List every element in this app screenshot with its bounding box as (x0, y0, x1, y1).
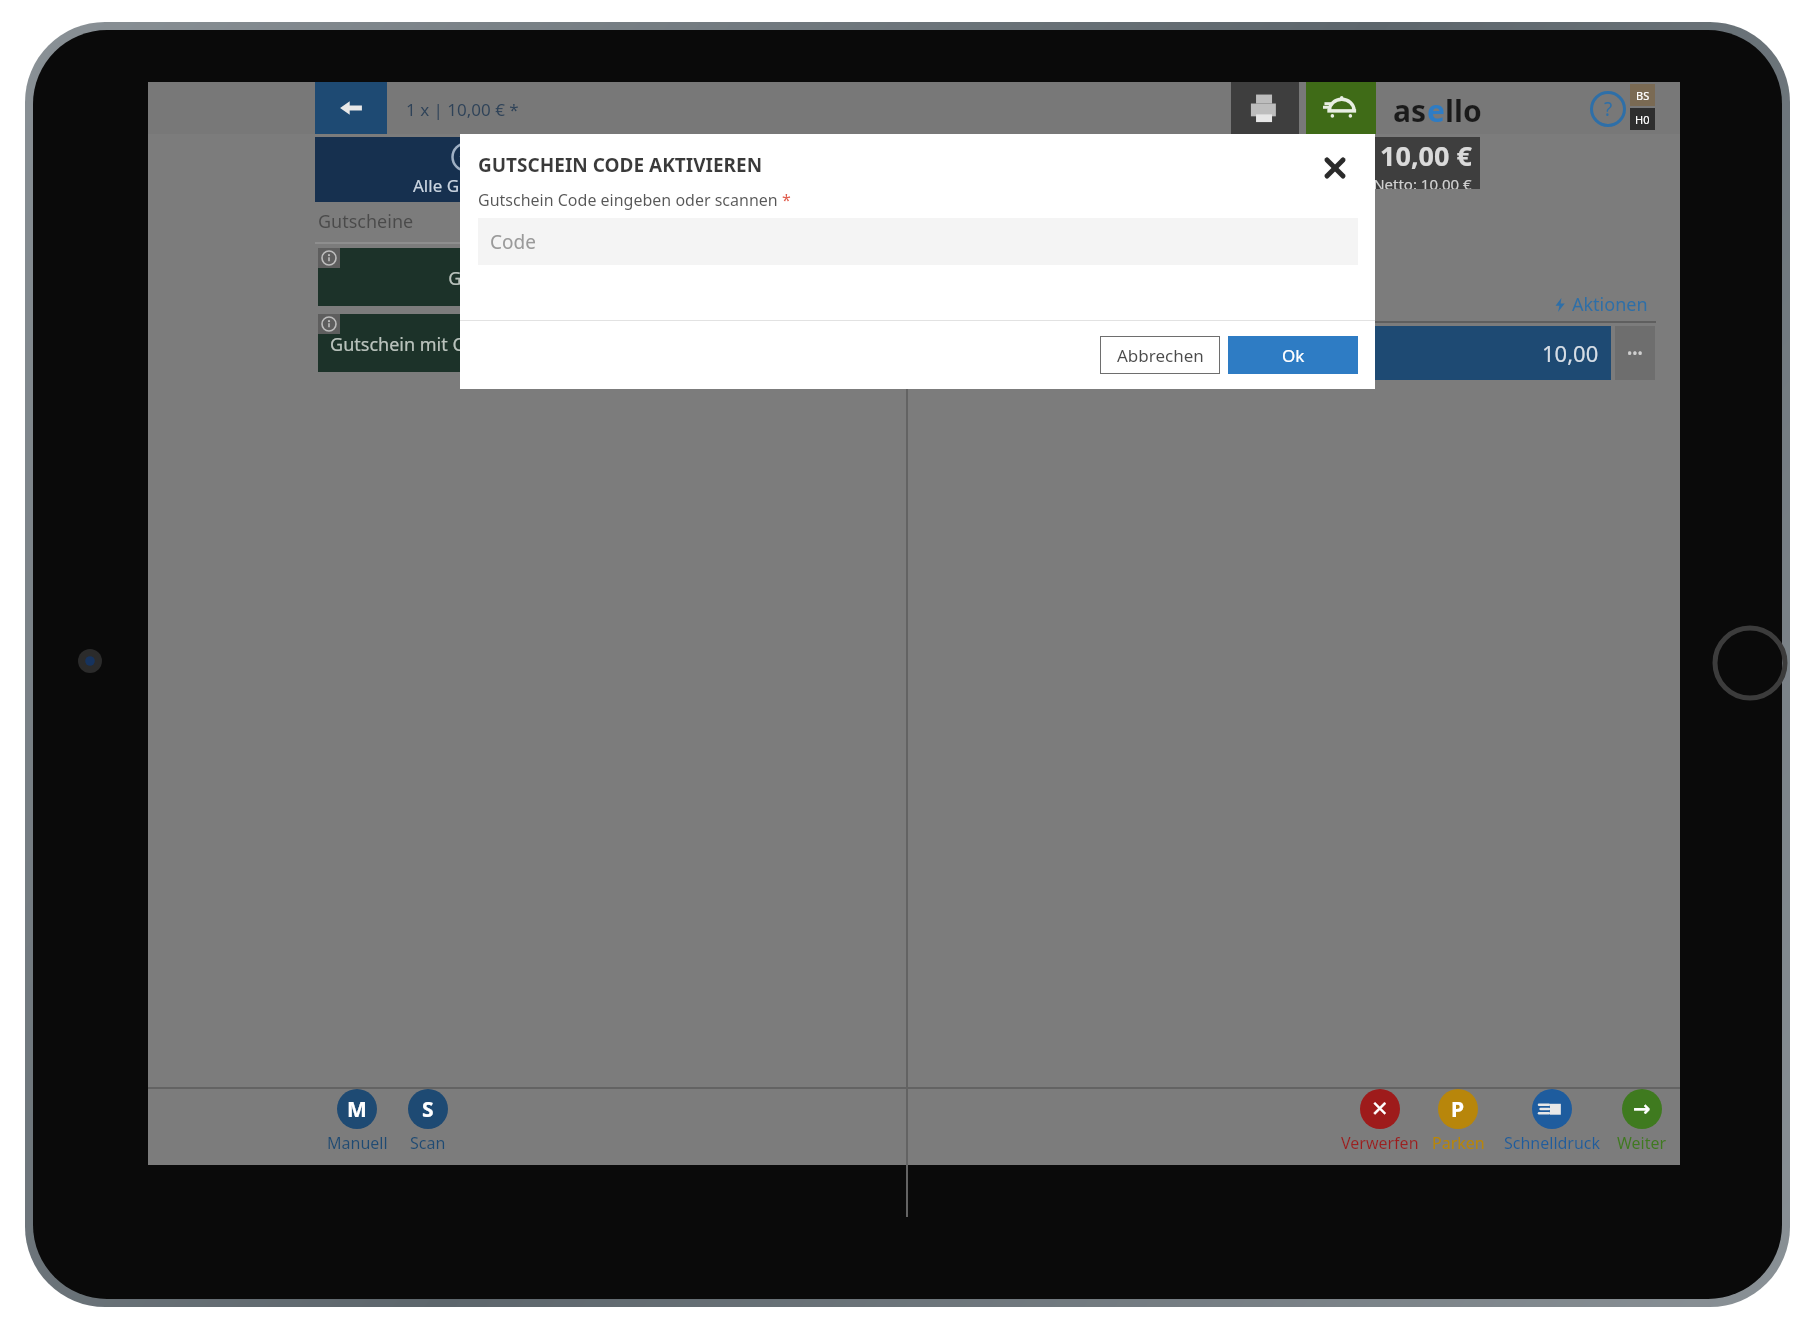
staticText: * (782, 189, 791, 211)
staticText: Aktionen (1572, 292, 1648, 317)
staticText: Schnelldruck (1504, 1132, 1601, 1154)
staticText: ✕ (1371, 1097, 1389, 1121)
staticText: ••• (1627, 344, 1643, 363)
button[interactable]: Schließen (1315, 148, 1355, 188)
button[interactable]: Abbrechen (1100, 336, 1220, 374)
staticText: llo (1445, 90, 1482, 126)
button[interactable]: S (386, 1089, 470, 1154)
button[interactable]: Gutschein ohne Code (513, 314, 710, 372)
staticText: GUTSCHEIN CODE AKTIVIEREN (478, 152, 763, 178)
staticText: e (1427, 90, 1445, 126)
staticText: BS (1636, 88, 1650, 103)
button[interactable]: 10,00 (1251, 326, 1611, 380)
button[interactable]: → (1600, 1089, 1684, 1154)
staticText: P (1451, 1095, 1465, 1124)
staticText: Abbrechen (1117, 344, 1204, 367)
button[interactable]: Service (1306, 82, 1376, 134)
button[interactable]: Alle Gruppen (315, 137, 615, 202)
staticText: Manuell (327, 1132, 388, 1154)
staticText: → (1633, 1097, 1651, 1121)
staticText: ? (1604, 96, 1613, 122)
staticText: Code (490, 229, 536, 255)
staticText: S (422, 1095, 434, 1124)
staticText: M (347, 1095, 367, 1124)
button[interactable]: Ok (1228, 336, 1358, 374)
button[interactable]: Drucken (1231, 82, 1299, 134)
button[interactable]: Zurück (315, 82, 387, 134)
staticText: Gutschein mit Code (330, 332, 496, 357)
button[interactable]: Gutschein Vor 10 (715, 314, 907, 372)
staticText: as (1393, 90, 1427, 126)
staticText: 10,00 (1542, 338, 1599, 368)
button[interactable]: Gutschein 10€ (318, 248, 698, 306)
button[interactable]: Aktionen (1553, 292, 1648, 317)
staticText: 1 x | 10,00 € * (406, 98, 519, 121)
button[interactable]: as (1393, 90, 1482, 126)
staticText: Scan (410, 1132, 446, 1154)
button[interactable]: Schnelldruck (1498, 1089, 1606, 1154)
staticText: Gutscheine (318, 209, 414, 234)
button[interactable]: Mehr (1615, 326, 1655, 380)
button[interactable]: Code (478, 218, 1358, 265)
staticText: ,0 % |Netto: 10,00 € (1332, 174, 1472, 189)
button[interactable]: ✕ (1338, 1089, 1422, 1154)
button[interactable]: Gutschein mit Code (318, 314, 508, 372)
staticText: Gutschein 10€ (448, 266, 569, 291)
staticText: Gutschein Code eingeben oder scannen (478, 189, 782, 211)
staticText: Ok (1282, 344, 1305, 367)
button[interactable]: M (315, 1089, 399, 1154)
staticText: Verwerfen (1341, 1132, 1419, 1154)
button[interactable]: Hilfe (1590, 91, 1626, 127)
staticText: Weiter (1617, 1132, 1667, 1154)
staticText: Alle Gruppen (413, 174, 518, 197)
staticText: Parken (1432, 1132, 1485, 1154)
staticText: H0 (1635, 112, 1650, 127)
button[interactable]: P (1416, 1089, 1500, 1154)
staticText: 10,00 € (1380, 137, 1472, 174)
